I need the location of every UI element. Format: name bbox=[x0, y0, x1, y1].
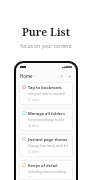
button[interactable]: Home bbox=[20, 73, 36, 79]
button[interactable]: Add bbox=[66, 73, 72, 79]
staticText: Change how lovely each list is seeing bbox=[28, 144, 70, 148]
staticText: focus on your content bbox=[20, 43, 72, 50]
staticText: Instant page theme bbox=[28, 137, 68, 142]
button[interactable]: Instant page theme bbox=[19, 134, 73, 157]
staticText: Tap to bookmark bbox=[28, 85, 62, 90]
staticText: Manage all folders bbox=[28, 111, 65, 116]
staticText: Keeps of detail bbox=[28, 163, 58, 168]
staticText: 04 items bbox=[28, 176, 40, 177]
button[interactable]: Keeps of detail bbox=[19, 160, 73, 180]
staticText: 21 items bbox=[28, 150, 40, 154]
staticText: 08 items bbox=[28, 124, 40, 128]
staticText: Pure List bbox=[22, 25, 70, 39]
button[interactable]: Tap to bookmark bbox=[19, 82, 73, 105]
staticText: Everyone belongs to one folder, put all bbox=[28, 118, 70, 122]
button[interactable]: Manage all folders bbox=[19, 108, 73, 131]
staticText: Home bbox=[20, 73, 33, 79]
staticText: Including where is looking closely, clea… bbox=[28, 170, 70, 174]
staticText: add your note to any well known source bbox=[28, 92, 70, 96]
staticText: 12 items bbox=[28, 98, 40, 102]
button[interactable]: Account bbox=[58, 73, 64, 79]
